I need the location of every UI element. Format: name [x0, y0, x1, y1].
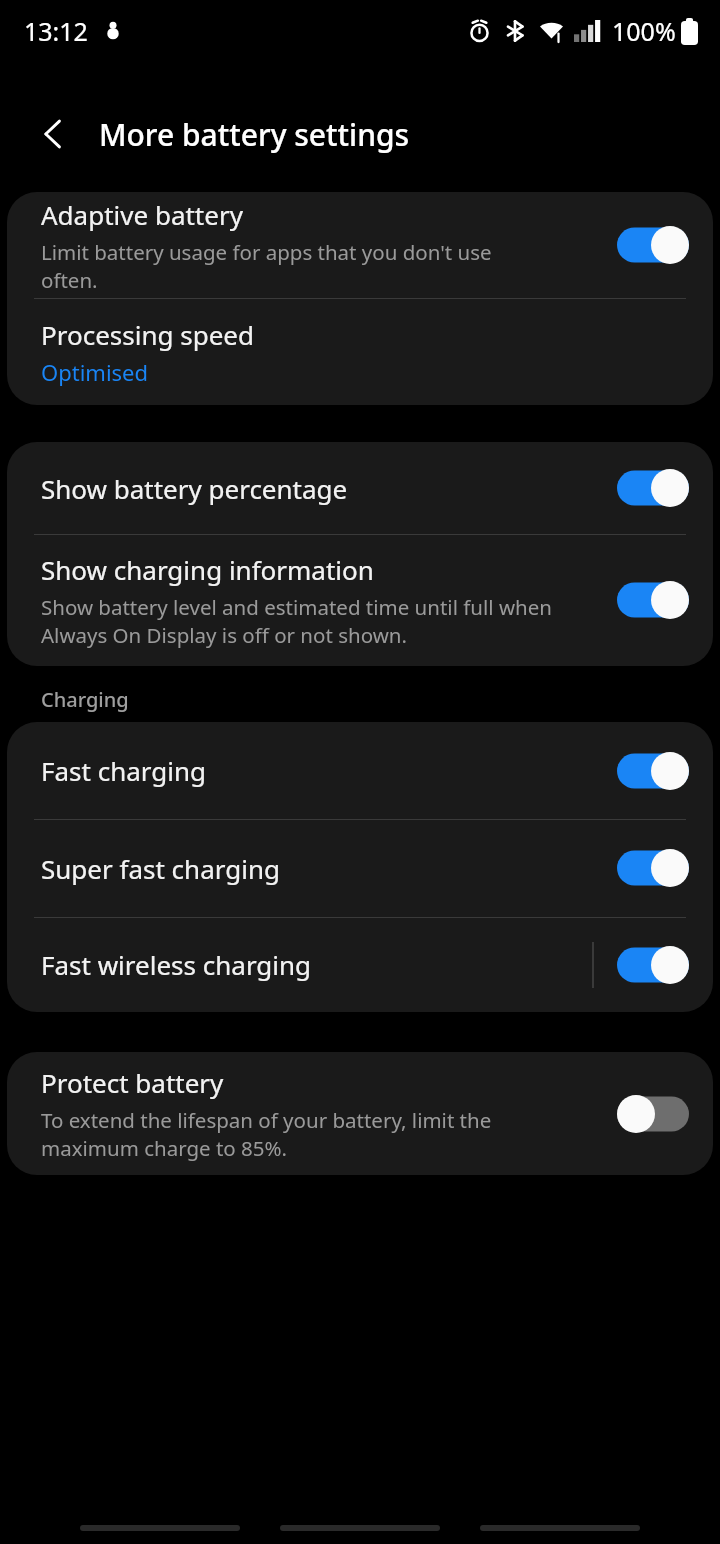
staticText: 100% — [612, 14, 676, 48]
staticText: Adaptive battery — [41, 197, 243, 232]
staticText: Processing speed — [41, 317, 255, 352]
button[interactable]: Toggle on — [617, 469, 689, 507]
button[interactable]: Toggle on — [617, 849, 689, 887]
staticText: Show battery level and estimated time un… — [41, 593, 573, 649]
button[interactable]: Adaptive battery — [7, 192, 713, 298]
button[interactable]: Toggle off — [617, 1095, 689, 1133]
button[interactable]: Toggle on — [617, 946, 689, 984]
staticText: Fast wireless charging — [41, 947, 312, 982]
staticText: Show battery percentage — [41, 471, 348, 506]
button[interactable]: Toggle on — [617, 752, 689, 790]
button[interactable]: Super fast charging — [7, 819, 713, 917]
button[interactable]: Toggle on — [617, 581, 689, 619]
staticText: More battery settings — [99, 114, 410, 155]
button[interactable]: Show battery percentage — [7, 442, 713, 534]
staticText: Protect battery — [41, 1065, 224, 1100]
button[interactable]: Back — [24, 104, 84, 164]
staticText: Optimised — [41, 357, 149, 387]
button[interactable]: Fast charging — [7, 722, 713, 819]
staticText: Show charging information — [41, 552, 374, 587]
staticText: Charging — [41, 686, 129, 713]
button[interactable]: Show charging information — [7, 534, 713, 666]
button[interactable]: Toggle on — [617, 226, 689, 264]
staticText: To extend the lifespan of your battery, … — [41, 1106, 573, 1162]
staticText: Limit battery usage for apps that you do… — [41, 238, 533, 294]
staticText: Super fast charging — [41, 851, 280, 886]
staticText: 13:12 — [24, 14, 88, 48]
button[interactable]: Protect battery — [7, 1052, 713, 1175]
button[interactable]: Processing speed — [7, 298, 713, 405]
button[interactable]: Fast wireless charging — [7, 917, 713, 1012]
staticText: Fast charging — [41, 753, 207, 788]
